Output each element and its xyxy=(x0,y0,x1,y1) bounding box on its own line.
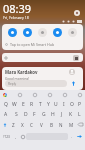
staticText: K xyxy=(69,111,73,118)
button[interactable]: K xyxy=(66,109,75,119)
staticText: I xyxy=(63,101,65,108)
button[interactable]: Mara Kardakov xyxy=(2,67,83,90)
staticText: D xyxy=(24,111,28,118)
button[interactable]: Y xyxy=(44,99,52,109)
button[interactable]: X xyxy=(18,119,27,130)
button[interactable]: D xyxy=(21,109,30,119)
staticText: X xyxy=(21,122,24,128)
button[interactable]: Backspace xyxy=(76,119,85,130)
staticText: Tap to open Mi Smart Hub xyxy=(10,42,55,47)
staticText: A xyxy=(4,111,8,118)
button[interactable]: Google xyxy=(2,92,8,98)
button[interactable]: Keyboard tool xyxy=(62,92,68,98)
button[interactable]: G xyxy=(39,109,48,119)
staticText: G xyxy=(42,111,46,118)
button[interactable]: A xyxy=(1,109,11,119)
staticText: P xyxy=(78,101,82,108)
staticText: L xyxy=(78,111,81,118)
button[interactable]: I xyxy=(60,99,68,109)
staticText: , xyxy=(15,134,17,139)
staticText: O xyxy=(70,101,74,108)
staticText: Reply xyxy=(8,82,17,86)
button[interactable]: W xyxy=(10,99,19,109)
staticText: C xyxy=(30,122,33,128)
button[interactable]: , xyxy=(12,130,19,143)
button[interactable]: Keyboard tool xyxy=(47,92,53,98)
staticText: V xyxy=(40,122,43,128)
staticText: 08:39 xyxy=(3,1,32,16)
button[interactable]: Send xyxy=(70,80,77,87)
button[interactable]: Quick setting xyxy=(8,28,17,37)
button[interactable]: P xyxy=(76,99,84,109)
button[interactable]: M xyxy=(66,119,76,130)
button[interactable]: Keyboard tool xyxy=(32,92,38,98)
button[interactable]: Shift xyxy=(0,119,9,130)
staticText: Z xyxy=(12,122,15,128)
button[interactable]: Reply xyxy=(5,80,67,87)
staticText: Mara Kardakov xyxy=(5,69,38,75)
staticText: N xyxy=(59,122,63,128)
button[interactable]: V xyxy=(36,119,46,130)
button[interactable]: R xyxy=(28,99,36,109)
button[interactable] xyxy=(2,53,83,62)
staticText: Y xyxy=(47,101,50,108)
staticText: U xyxy=(54,101,58,108)
staticText: T xyxy=(39,101,42,108)
staticText: B xyxy=(50,122,53,128)
staticText: Fri, February 18 xyxy=(3,15,29,20)
button[interactable]: Settings xyxy=(74,10,80,16)
button[interactable]: J xyxy=(57,109,66,119)
button[interactable]: H xyxy=(48,109,57,119)
button[interactable]: U xyxy=(52,99,60,109)
button[interactable]: B xyxy=(46,119,56,130)
staticText: W xyxy=(12,101,17,108)
button[interactable]: F xyxy=(30,109,39,119)
button[interactable]: Z xyxy=(9,119,18,130)
staticText: F xyxy=(33,111,36,118)
button[interactable]: Quick setting xyxy=(38,28,47,37)
button[interactable]: Quick setting xyxy=(53,28,62,37)
staticText: E xyxy=(22,101,25,108)
button[interactable]: Keyboard tool xyxy=(17,92,23,98)
staticText: . xyxy=(71,134,73,139)
button[interactable]: C xyxy=(27,119,36,130)
staticText: ?123 xyxy=(3,135,10,139)
staticText: Good morning! xyxy=(5,76,30,81)
button[interactable]: T xyxy=(36,99,44,109)
staticText: M xyxy=(69,122,74,128)
button[interactable]: N xyxy=(56,119,66,130)
button[interactable]: Quick setting xyxy=(23,28,32,37)
button[interactable]: Keyboard tool xyxy=(77,92,83,98)
button[interactable]: Q xyxy=(1,99,10,109)
staticText: Q xyxy=(4,101,8,108)
staticText: S xyxy=(15,111,18,118)
staticText: J xyxy=(61,111,63,118)
staticText: R xyxy=(30,101,34,108)
button[interactable]: O xyxy=(68,99,76,109)
button[interactable]: S xyxy=(11,109,21,119)
button[interactable]: L xyxy=(75,109,84,119)
button[interactable]: Quick setting xyxy=(68,28,77,37)
button[interactable]: ?123 xyxy=(1,130,12,143)
button[interactable]: Emoji xyxy=(19,130,26,143)
button[interactable]: Enter xyxy=(75,130,84,143)
button[interactable]: E xyxy=(19,99,28,109)
staticText: H xyxy=(51,111,55,118)
